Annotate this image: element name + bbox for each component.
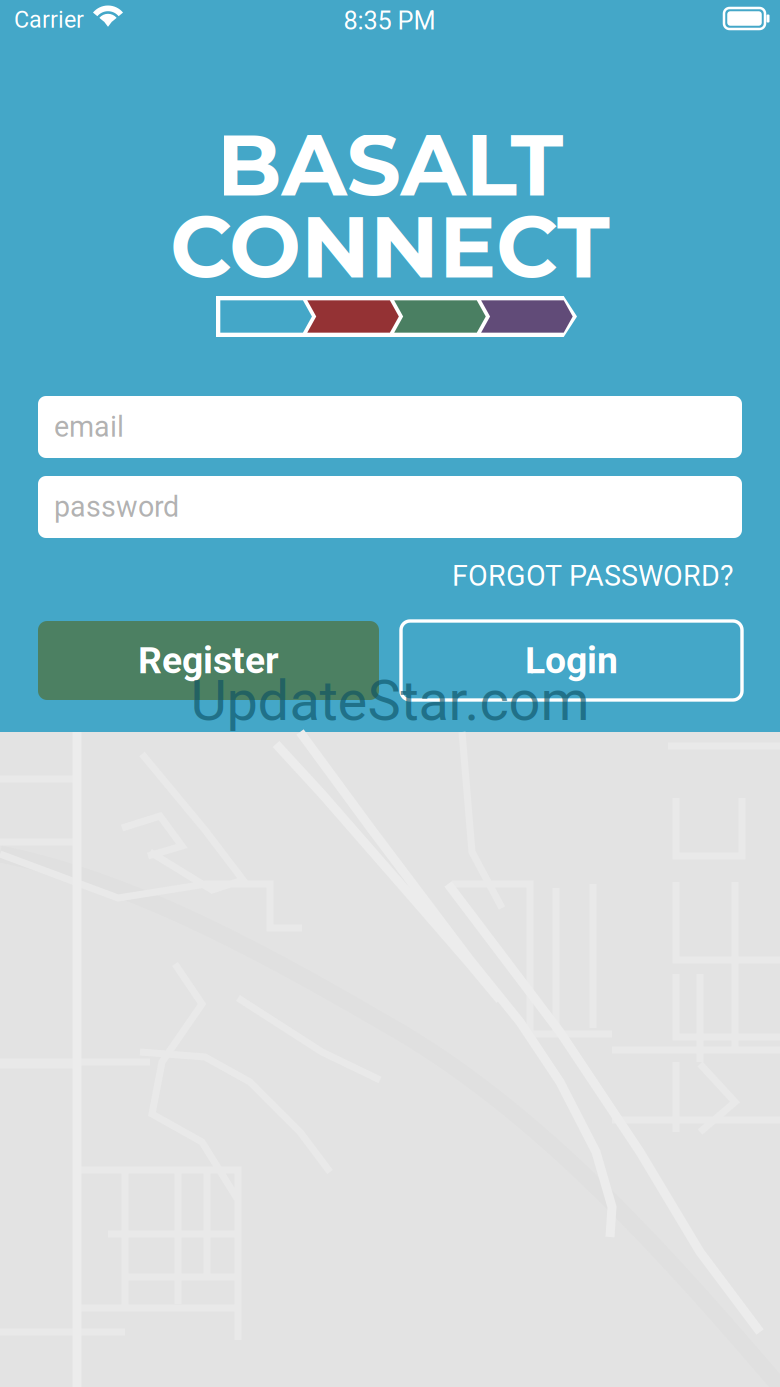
staticText: Carrier: [14, 6, 84, 33]
button[interactable]: password: [38, 476, 742, 538]
staticText: CONNECT: [170, 195, 610, 299]
staticText: UpdateStar.com: [190, 668, 589, 734]
staticText: email: [54, 410, 124, 444]
staticText: Login: [525, 639, 618, 682]
staticText: password: [54, 490, 179, 524]
staticText: 8:35 PM: [343, 6, 435, 36]
staticText: FORGOT PASSWORD?: [452, 559, 734, 593]
button[interactable]: Login: [401, 621, 742, 700]
button[interactable]: Register: [38, 621, 379, 700]
button[interactable]: email: [38, 396, 742, 458]
staticText: BASALT: [216, 113, 563, 217]
staticText: Register: [138, 639, 279, 682]
button[interactable]: FORGOT PASSWORD?: [414, 555, 734, 597]
